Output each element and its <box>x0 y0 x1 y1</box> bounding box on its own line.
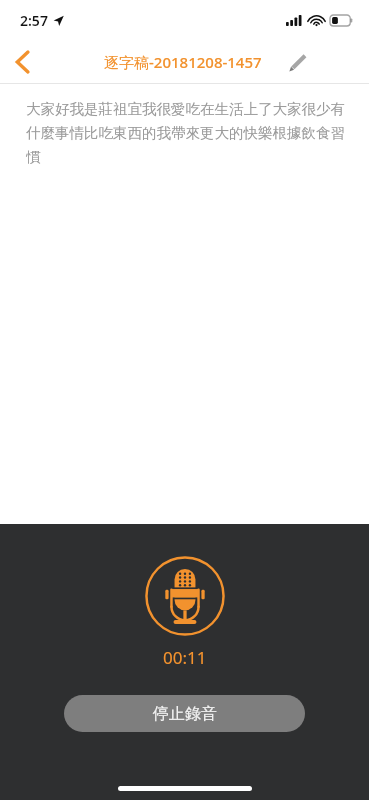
staticText: 大家好我是莊祖宜我很愛吃在生活上了大家很少有什麼事情比吃東西的我帶來更大的快樂根… <box>26 100 347 166</box>
staticText: 停止錄音 <box>153 704 217 724</box>
button[interactable]: 停止錄音 <box>64 695 305 732</box>
button[interactable]: Edit title <box>278 43 316 81</box>
button[interactable]: Back <box>0 40 44 84</box>
staticText: 00:11 <box>163 646 207 669</box>
staticText: 2:57 <box>20 11 48 30</box>
button[interactable]: Recording microphone <box>144 555 226 637</box>
staticText: 逐字稿-20181208-1457 <box>104 52 262 72</box>
